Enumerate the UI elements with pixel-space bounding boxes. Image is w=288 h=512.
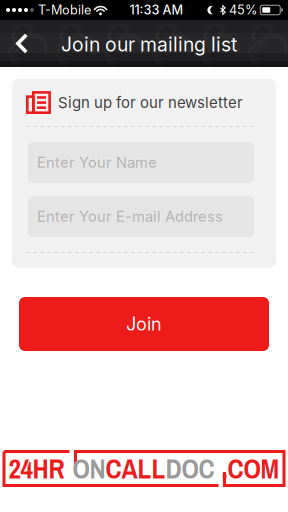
staticText: CALL [105,450,165,487]
staticText: Enter Your E-mail Address [37,208,223,225]
staticText: 45% [229,2,257,18]
button[interactable]: Back [0,20,46,67]
button[interactable]: Join [19,297,269,351]
staticText: Enter Your Name [37,154,157,171]
staticText: Sign up for our newsletter [58,93,243,112]
staticText: ON [72,450,105,487]
staticText: Join our mailing list [61,33,237,56]
staticText: T-Mobile [38,2,91,18]
staticText: Join [126,313,162,335]
staticText: .COM [221,450,279,487]
staticText: 24HR [8,450,64,487]
staticText: DOC [165,450,214,487]
staticText: 11:33 AM [129,2,183,18]
